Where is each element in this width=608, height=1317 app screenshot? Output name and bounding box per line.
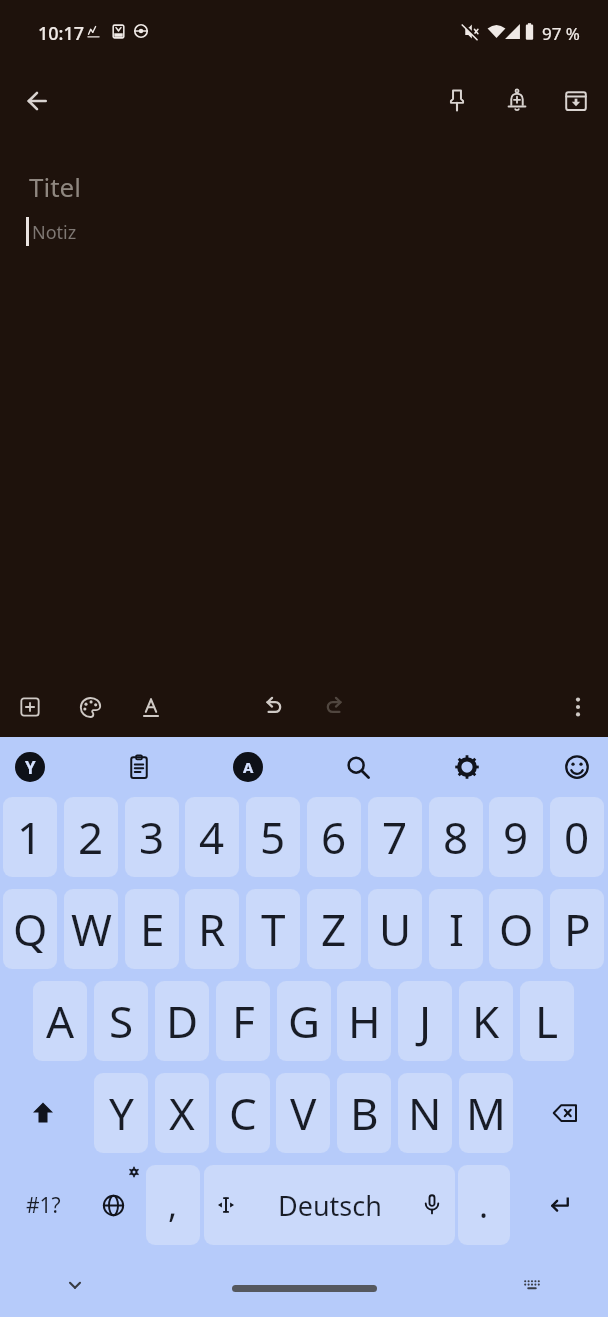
staticText: M	[466, 1083, 506, 1143]
staticText: 6	[321, 807, 347, 867]
button[interactable]: L	[520, 981, 574, 1061]
button[interactable]	[550, 1098, 580, 1128]
button[interactable]	[566, 695, 590, 719]
button[interactable]: P	[550, 889, 604, 969]
button[interactable]	[545, 1191, 573, 1219]
staticText: S	[109, 991, 134, 1051]
button[interactable]: K	[459, 981, 513, 1061]
button[interactable]: ,	[146, 1165, 200, 1245]
button[interactable]: 4	[185, 797, 239, 877]
button[interactable]: Y	[15, 752, 45, 782]
button[interactable]	[132, 22, 150, 40]
staticText: Y	[109, 1083, 134, 1143]
button[interactable]	[486, 21, 507, 42]
button[interactable]	[86, 1165, 144, 1245]
button[interactable]: 9	[489, 797, 543, 877]
button[interactable]: .	[458, 1165, 510, 1245]
button[interactable]: 5	[246, 797, 300, 877]
button[interactable]	[443, 87, 471, 115]
button[interactable]: A	[33, 981, 87, 1061]
button[interactable]	[562, 752, 592, 782]
button[interactable]	[28, 1098, 58, 1128]
staticText: I	[449, 899, 464, 959]
button[interactable]: 7	[368, 797, 422, 877]
button[interactable]: G	[277, 981, 331, 1061]
staticText: R	[198, 899, 226, 959]
button[interactable]	[562, 87, 590, 115]
button[interactable]	[23, 87, 51, 115]
staticText: W	[71, 899, 112, 959]
button[interactable]	[343, 752, 373, 782]
button[interactable]: O	[489, 889, 543, 969]
button[interactable]: 1	[3, 797, 57, 877]
button[interactable]: 0	[550, 797, 604, 877]
button[interactable]	[232, 1285, 377, 1292]
staticText: 8	[443, 807, 469, 867]
button[interactable]	[110, 23, 127, 40]
button[interactable]: #1?	[0, 1165, 86, 1245]
button[interactable]	[85, 23, 102, 40]
staticText: 10:17	[38, 21, 85, 46]
button[interactable]: Z	[307, 889, 361, 969]
button[interactable]: X	[155, 1073, 209, 1153]
button[interactable]: N	[398, 1073, 452, 1153]
button[interactable]	[77, 694, 104, 721]
button[interactable]: I	[429, 889, 483, 969]
button[interactable]	[452, 752, 482, 782]
staticText: C	[229, 1083, 257, 1143]
button[interactable]: V	[276, 1073, 330, 1153]
staticText: G	[288, 991, 321, 1051]
button[interactable]	[138, 694, 164, 720]
button[interactable]	[17, 694, 43, 720]
button[interactable]	[460, 21, 481, 42]
button[interactable]	[261, 694, 287, 720]
staticText: J	[419, 991, 432, 1051]
button[interactable]: C	[216, 1073, 270, 1153]
button[interactable]: R	[185, 889, 239, 969]
staticText: O	[499, 899, 534, 959]
button[interactable]: M	[459, 1073, 513, 1153]
button[interactable]: Deutsch	[204, 1165, 455, 1245]
button[interactable]: F	[216, 981, 270, 1061]
staticText: A	[46, 991, 75, 1051]
button[interactable]: S	[94, 981, 148, 1061]
button[interactable]: T	[246, 889, 300, 969]
staticText: K	[472, 991, 500, 1051]
button[interactable]: 6	[307, 797, 361, 877]
staticText: B	[350, 1083, 379, 1143]
staticText: 97 %	[542, 22, 580, 45]
button[interactable]: J	[398, 981, 452, 1061]
button[interactable]	[502, 21, 523, 42]
button[interactable]	[520, 1273, 544, 1297]
staticText: X	[169, 1083, 195, 1143]
button[interactable]: 8	[429, 797, 483, 877]
button[interactable]	[519, 21, 540, 42]
button[interactable]: W	[64, 889, 118, 969]
button[interactable]	[503, 87, 531, 115]
button[interactable]: Y	[94, 1073, 148, 1153]
button[interactable]: B	[337, 1073, 391, 1153]
staticText: D	[166, 991, 199, 1051]
button[interactable]: H	[337, 981, 391, 1061]
button[interactable]: 2	[64, 797, 118, 877]
staticText: 1	[17, 807, 43, 867]
staticText: 4	[199, 807, 225, 867]
button[interactable]: E	[125, 889, 179, 969]
button[interactable]	[128, 1166, 140, 1178]
button[interactable]	[63, 1273, 87, 1297]
button[interactable]: U	[368, 889, 422, 969]
button[interactable]: A	[233, 752, 263, 782]
button[interactable]	[124, 752, 154, 782]
staticText: Z	[321, 899, 347, 959]
button[interactable]: D	[155, 981, 209, 1061]
button[interactable]: Q	[3, 889, 57, 969]
button[interactable]	[419, 1192, 445, 1218]
button[interactable]	[100, 1192, 127, 1219]
staticText: T	[261, 899, 286, 959]
button[interactable]	[510, 1165, 608, 1245]
staticText: V	[290, 1083, 317, 1143]
staticText: E	[140, 899, 165, 959]
button[interactable]: 3	[125, 797, 179, 877]
button[interactable]	[321, 694, 347, 720]
button[interactable]	[213, 1192, 239, 1218]
